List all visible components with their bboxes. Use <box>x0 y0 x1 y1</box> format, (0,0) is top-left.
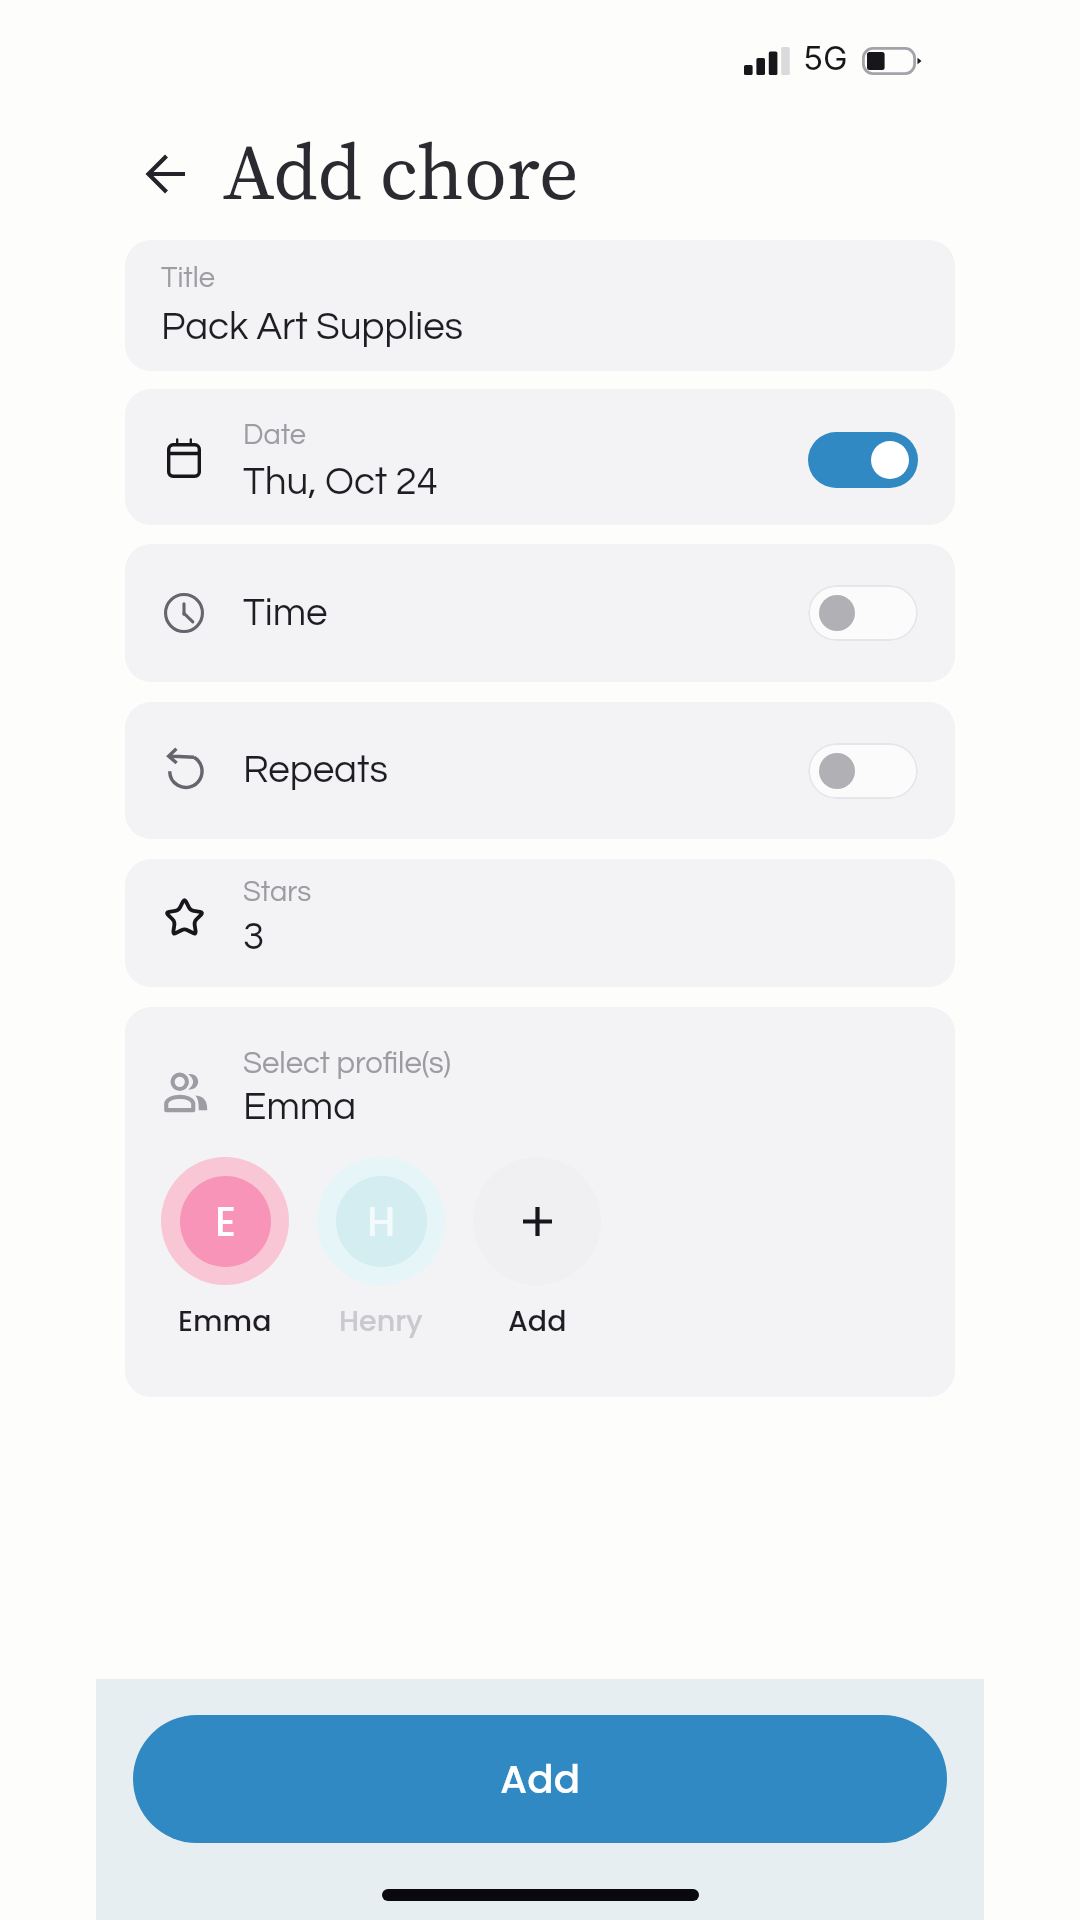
button[interactable]: Add <box>133 1715 947 1843</box>
staticText: Time <box>243 593 328 633</box>
staticText: Add <box>508 1301 567 1341</box>
button[interactable]: Repeats off <box>808 743 918 799</box>
staticText: Select profile(s) <box>243 1048 451 1080</box>
button[interactable]: Date enabled <box>808 432 918 488</box>
staticText: Emma <box>243 1087 357 1127</box>
button[interactable]: Back <box>130 138 202 210</box>
staticText: Add <box>500 1752 581 1807</box>
staticText: Date <box>243 420 306 450</box>
staticText: Thu, Oct 24 <box>243 462 438 502</box>
staticText: Stars <box>243 877 312 907</box>
button[interactable]: Add profile <box>473 1157 601 1341</box>
staticText: Title <box>161 263 215 293</box>
staticText: Pack Art Supplies <box>161 307 464 347</box>
button[interactable]: H <box>317 1157 445 1341</box>
staticText: Emma <box>178 1301 272 1341</box>
staticText: Repeats <box>243 750 389 790</box>
button[interactable]: Time off <box>808 585 918 641</box>
staticText: Add chore <box>223 118 579 210</box>
button[interactable]: Time <box>125 544 955 682</box>
staticText: 3 <box>243 917 265 957</box>
staticText: E <box>215 1194 236 1250</box>
button[interactable]: Repeats <box>125 702 955 839</box>
button[interactable]: E <box>161 1157 289 1341</box>
button[interactable]: Title <box>125 240 955 371</box>
button[interactable]: Select profile(s) <box>125 1007 955 1397</box>
button[interactable]: Stars <box>125 859 955 987</box>
button[interactable]: Date <box>125 389 955 525</box>
staticText: 5G <box>803 38 848 78</box>
staticText: H <box>367 1194 396 1250</box>
staticText: Henry <box>339 1301 423 1341</box>
